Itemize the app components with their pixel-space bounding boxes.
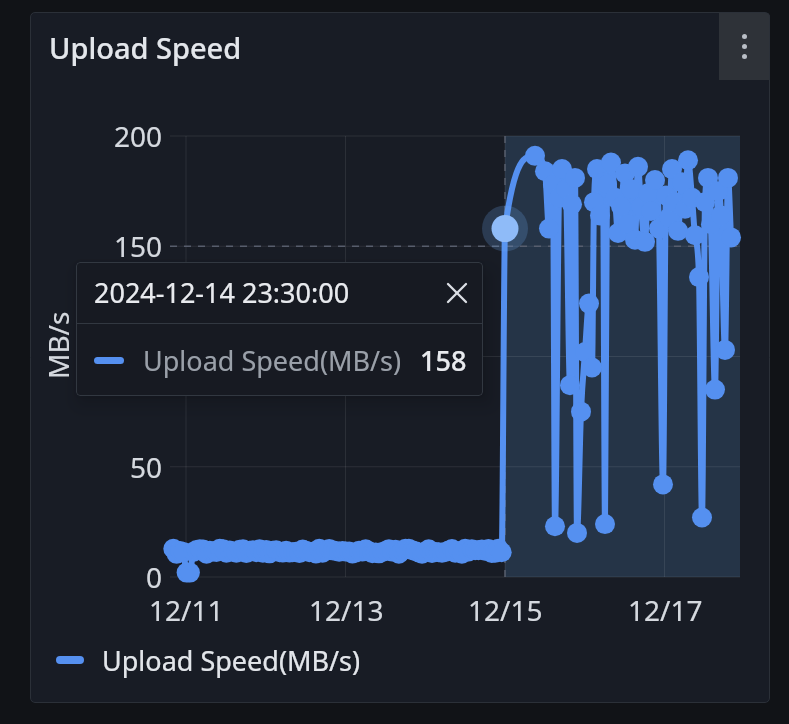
staticText: Upload Speed(MB/s): [143, 342, 402, 379]
staticText: Upload Speed(MB/s): [102, 642, 361, 679]
staticText: Upload Speed: [49, 28, 242, 67]
staticText: 12/17: [628, 591, 703, 629]
staticText: 50: [130, 448, 163, 486]
staticText: 150: [114, 227, 163, 265]
staticText: 12/13: [309, 591, 384, 629]
staticText: MB/s: [39, 311, 77, 379]
staticText: 12/15: [468, 591, 543, 629]
staticText: 2024-12-14 23:30:00: [94, 274, 350, 311]
staticText: 200: [114, 117, 163, 155]
staticText: 100: [114, 338, 163, 376]
button[interactable]: Upload Speed(MB/s): [56, 640, 361, 680]
staticText: 12/11: [149, 591, 224, 629]
staticText: 0: [146, 558, 163, 596]
button[interactable]: More options: [719, 13, 770, 80]
button[interactable]: Close: [440, 276, 474, 310]
staticText: 158: [420, 342, 467, 379]
